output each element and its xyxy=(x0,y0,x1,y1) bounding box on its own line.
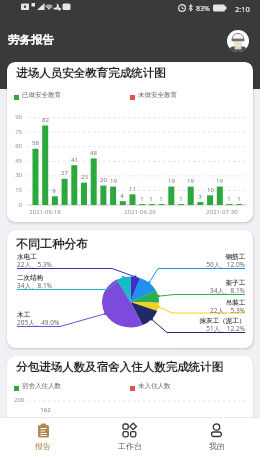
button[interactable]: 工作台 xyxy=(86,417,173,462)
staticText: 2021-06-29 xyxy=(124,208,156,216)
staticText: 19 xyxy=(216,177,223,185)
staticText: 架子工 xyxy=(225,279,245,287)
staticText: 48 xyxy=(90,149,97,157)
button[interactable]: 我的 xyxy=(173,417,260,462)
staticText: 木工 xyxy=(17,311,30,319)
staticText: 22人、5.3% xyxy=(209,306,245,315)
staticText: 1 xyxy=(237,195,241,203)
button[interactable] xyxy=(227,30,249,52)
button[interactable] xyxy=(7,62,253,222)
staticText: 不同工种分布 xyxy=(16,236,88,251)
staticText: 2021-06-18 xyxy=(29,208,61,216)
staticText: 2:10 xyxy=(235,4,250,14)
staticText: 抹灰工（泥工） xyxy=(199,317,245,325)
staticText: 9 xyxy=(52,187,56,195)
staticText: 34人、8.1% xyxy=(17,281,53,290)
staticText: 0 xyxy=(18,201,22,209)
button[interactable] xyxy=(7,230,253,348)
staticText: 2021-07-30 xyxy=(206,208,238,216)
staticText: 报告 xyxy=(35,441,51,451)
staticText: 3 xyxy=(198,193,202,201)
staticText: 34人、8.1% xyxy=(209,286,245,295)
button[interactable] xyxy=(7,356,253,417)
staticText: 水电工 xyxy=(17,253,37,261)
staticText: 58 xyxy=(32,139,39,147)
staticText: 19 xyxy=(187,177,194,185)
staticText: 10 xyxy=(207,186,214,194)
staticText: 劳务报告 xyxy=(8,33,54,47)
staticText: 吊装工 xyxy=(225,299,245,307)
staticText: 75 xyxy=(15,128,22,136)
staticText: 未入住人数 xyxy=(138,382,171,390)
staticText: 83% xyxy=(196,4,210,14)
staticText: 4 xyxy=(120,192,124,200)
staticText: 30 xyxy=(15,171,22,179)
staticText: 1 xyxy=(179,195,183,203)
staticText: 宿舍入住人数 xyxy=(22,382,61,390)
button[interactable]: 报告 xyxy=(0,417,86,462)
staticText: 23 xyxy=(81,173,88,181)
staticText: 分包进场人数及宿舍入住人数完成统计图 xyxy=(16,360,223,374)
staticText: 19 xyxy=(168,177,175,185)
staticText: 15 xyxy=(15,186,22,194)
staticText: 200 xyxy=(14,396,25,404)
staticText: 51人、12.2% xyxy=(206,324,245,333)
staticText: 162 xyxy=(40,406,51,414)
staticText: 1 xyxy=(149,195,153,203)
staticText: 1 xyxy=(140,195,144,203)
staticText: 进场人员安全教育完成统计图 xyxy=(16,66,166,80)
staticText: 205人、49.0% xyxy=(17,318,60,327)
staticText: 二次结构 xyxy=(17,274,43,282)
staticText: 90 xyxy=(15,113,22,121)
staticText: 60 xyxy=(15,142,22,150)
staticText: 22人、5.3% xyxy=(17,260,53,269)
staticText: 45 xyxy=(15,157,22,165)
staticText: 20 xyxy=(100,176,107,184)
staticText: 27 xyxy=(61,169,68,177)
staticText: 41 xyxy=(71,156,78,164)
staticText: 1 xyxy=(159,195,163,203)
staticText: 我的 xyxy=(209,441,225,451)
staticText: 钢筋工 xyxy=(225,253,245,261)
staticText: 工作台 xyxy=(118,441,142,451)
staticText: 1 xyxy=(227,195,231,203)
staticText: 已做安全教育 xyxy=(22,91,61,99)
staticText: 未做安全教育 xyxy=(138,91,177,99)
staticText: 82 xyxy=(42,116,49,124)
staticText: 11 xyxy=(129,185,136,193)
staticText: 19 xyxy=(110,177,117,185)
staticText: 50人、12.0% xyxy=(206,260,245,269)
